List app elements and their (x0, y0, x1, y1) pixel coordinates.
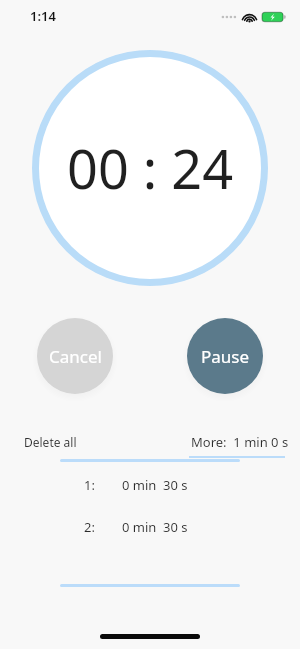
staticText: 2: (84, 518, 95, 536)
staticText: 1: (84, 476, 95, 494)
staticText: 1:14 (30, 7, 56, 25)
staticText: Cancel (49, 345, 102, 368)
staticText: More: 1 min 0 s (191, 433, 289, 451)
button[interactable]: 1: (60, 474, 240, 496)
staticText: 00 : 24 (67, 131, 234, 205)
button[interactable]: Delete all (18, 428, 83, 456)
staticText: Pause (201, 345, 250, 368)
button[interactable]: Pause (187, 318, 263, 394)
button[interactable]: Cancel (37, 318, 113, 394)
staticText: 0 min 30 s (122, 476, 188, 494)
button[interactable]: 2: (60, 516, 240, 538)
button[interactable]: More: 1 min 0 s (189, 428, 291, 458)
staticText: Delete all (24, 434, 77, 450)
staticText: 0 min 30 s (122, 518, 188, 536)
